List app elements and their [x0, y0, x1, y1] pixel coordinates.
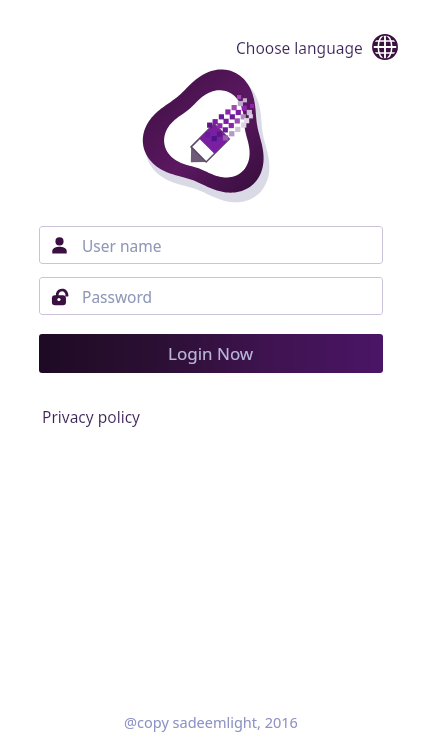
button[interactable]: Choose language: [232, 30, 402, 64]
staticText: @copy sadeemlight, 2016: [124, 712, 298, 732]
staticText: Login Now: [168, 342, 254, 365]
staticText: Privacy policy: [42, 406, 140, 427]
staticText: User name: [82, 235, 162, 256]
staticText: Choose language: [236, 37, 363, 58]
button[interactable]: Password: [39, 277, 383, 315]
button[interactable]: Login Now: [39, 334, 383, 373]
button[interactable]: User name: [39, 226, 383, 264]
other: Choose language: [372, 34, 398, 60]
button[interactable]: Privacy policy: [39, 403, 143, 430]
staticText: Password: [82, 286, 153, 307]
